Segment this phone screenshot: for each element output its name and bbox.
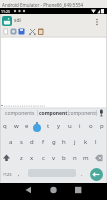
staticText: u — [68, 122, 72, 130]
staticText: p — [100, 122, 104, 130]
staticText: n — [73, 154, 77, 162]
staticText: t — [47, 122, 50, 130]
button[interactable]: u — [62, 120, 78, 132]
staticText: 11:25 — [1, 9, 10, 14]
button[interactable]: m — [78, 152, 94, 164]
button[interactable]: b — [56, 152, 72, 164]
staticText: h — [62, 138, 66, 146]
button[interactable]: e — [19, 120, 35, 132]
button[interactable] — [1, 151, 13, 164]
staticText: z — [20, 154, 23, 162]
button[interactable]: n — [67, 152, 83, 164]
staticText: component — [39, 110, 68, 117]
staticText: x — [30, 154, 34, 162]
button[interactable]: g — [46, 136, 62, 148]
button[interactable] — [21, 184, 37, 198]
staticText: . — [81, 170, 83, 178]
staticText: i — [79, 122, 81, 130]
staticText: l — [95, 138, 97, 146]
staticText: y — [57, 122, 61, 130]
staticText: ?123 — [3, 172, 12, 177]
button[interactable] — [93, 151, 106, 164]
button[interactable]: v — [46, 152, 62, 164]
button[interactable]: components — [3, 108, 37, 118]
button[interactable] — [2, 16, 12, 26]
button[interactable]: j — [67, 136, 83, 148]
button[interactable]: , — [11, 168, 27, 180]
staticText: components — [5, 110, 35, 117]
button[interactable]: q — [0, 120, 13, 132]
button[interactable] — [90, 168, 103, 181]
button[interactable] — [46, 184, 62, 198]
button[interactable]: t — [40, 120, 56, 132]
staticText: d — [30, 138, 34, 146]
staticText: components — [68, 110, 98, 117]
button[interactable]: f — [35, 136, 51, 148]
button[interactable]: l — [88, 136, 104, 148]
staticText: g — [52, 138, 56, 146]
staticText: , — [18, 170, 20, 178]
button[interactable]: d — [24, 136, 40, 148]
staticText: e — [25, 122, 29, 130]
button[interactable]: p — [94, 120, 107, 132]
staticText: sdi — [14, 17, 21, 24]
button[interactable]: ?123 — [0, 168, 15, 180]
button[interactable]: x — [24, 152, 40, 164]
staticText: b — [62, 154, 66, 162]
staticText: a — [9, 138, 13, 146]
staticText: v — [52, 154, 56, 162]
button[interactable] — [0, 14, 107, 37]
button[interactable]: r — [29, 120, 45, 132]
button[interactable]: w — [8, 120, 24, 132]
button[interactable]: . — [74, 168, 90, 180]
staticText: o — [89, 122, 93, 130]
staticText: s — [20, 138, 23, 146]
button[interactable]: component — [38, 108, 68, 118]
staticText: k — [84, 138, 88, 146]
button[interactable]: s — [13, 136, 29, 148]
button[interactable]: c — [35, 152, 51, 164]
staticText: m — [83, 154, 89, 162]
button[interactable]: components — [68, 108, 98, 118]
button[interactable] — [97, 108, 107, 118]
staticText: j — [74, 138, 76, 146]
button[interactable]: h — [56, 136, 72, 148]
button[interactable]: o — [83, 120, 99, 132]
button[interactable] — [70, 184, 86, 198]
staticText: c — [42, 154, 45, 162]
staticText: Android Emulator - Phone66_649:5554 — [2, 2, 84, 8]
staticText: q — [3, 122, 7, 130]
button[interactable]: y — [51, 120, 67, 132]
staticText: r — [36, 122, 39, 130]
staticText: f — [42, 138, 45, 146]
button[interactable]: k — [78, 136, 94, 148]
button[interactable]: z — [13, 152, 29, 164]
button[interactable]: i — [72, 120, 88, 132]
button[interactable]: a — [3, 136, 19, 148]
staticText: w — [14, 122, 19, 130]
